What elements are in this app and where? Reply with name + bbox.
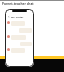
staticText: Ms. Carter: [11, 15, 24, 18]
button[interactable]: [7, 35, 32, 40]
button[interactable]: [7, 48, 32, 53]
button[interactable]: [7, 28, 32, 33]
button[interactable]: Back: [7, 15, 10, 18]
button[interactable]: [7, 21, 32, 26]
staticText: Parent-teacher chat: [2, 2, 34, 6]
button[interactable]: [7, 42, 32, 46]
staticText: <: [8, 15, 10, 18]
button[interactable]: Back: [7, 15, 32, 18]
